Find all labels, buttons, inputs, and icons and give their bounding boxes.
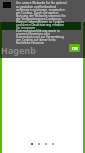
staticText: Um unsere Webseite für Sie optimal zu ge…	[16, 1, 67, 44]
staticText: OK	[72, 46, 78, 51]
button[interactable]: OK	[69, 44, 80, 52]
staticText: Hagenb	[1, 44, 36, 56]
